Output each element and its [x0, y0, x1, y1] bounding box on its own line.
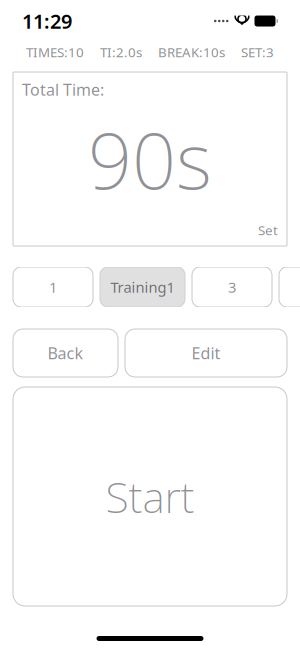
staticText: 1	[49, 277, 57, 297]
button[interactable]: 3	[192, 267, 272, 307]
staticText: Total Time:	[22, 79, 104, 100]
staticText: TI:2.0s	[100, 43, 142, 61]
button[interactable]: Edit	[125, 329, 287, 377]
button[interactable]: 1	[13, 267, 93, 307]
button[interactable]: Total Time:	[13, 72, 287, 246]
staticText: TIMES:10	[26, 43, 84, 61]
button[interactable]: Back	[13, 329, 118, 377]
staticText: 3	[228, 277, 236, 297]
staticText: SET:3	[241, 43, 274, 61]
button[interactable]: 4	[279, 267, 300, 307]
staticText: Start	[105, 468, 194, 525]
button[interactable]: Start	[13, 387, 287, 606]
button[interactable]: Training1	[100, 267, 185, 307]
staticText: BREAK:10s	[158, 43, 225, 61]
staticText: Set	[258, 221, 278, 239]
staticText: Training1	[110, 277, 174, 297]
staticText: Edit	[191, 342, 220, 364]
staticText: 11:29	[22, 8, 72, 34]
staticText: 90s	[88, 108, 212, 210]
staticText: Back	[47, 342, 83, 364]
